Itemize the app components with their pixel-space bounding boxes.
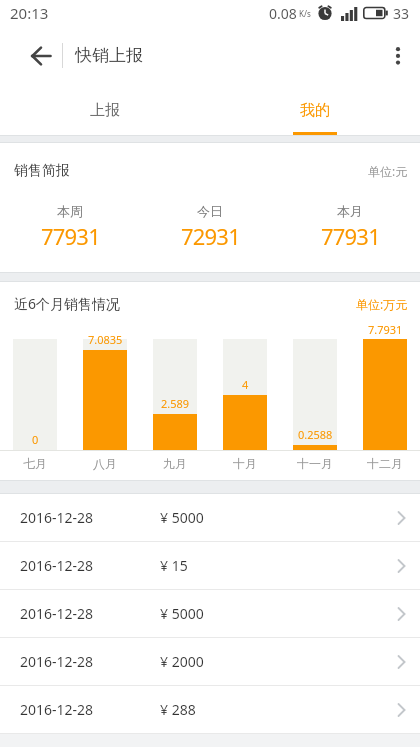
staticText: 0.2588: [298, 427, 333, 442]
staticText: 7.7931: [368, 322, 403, 336]
staticText: 我的: [300, 101, 330, 120]
staticText: 十二月: [367, 456, 403, 471]
staticText: 本月: [337, 203, 363, 219]
staticText: 2016-12-28: [20, 556, 160, 575]
staticText: 0: [32, 432, 39, 447]
button[interactable]: 2016-12-28: [0, 542, 420, 590]
staticText: 单位:万元: [356, 296, 408, 312]
staticText: 2016-12-28: [20, 604, 160, 623]
staticText: K/s: [299, 8, 311, 19]
button[interactable]: [376, 26, 420, 85]
button[interactable]: 2016-12-28: [0, 686, 420, 734]
staticText: 2016-12-28: [20, 508, 160, 527]
staticText: 八月: [93, 456, 117, 471]
staticText: 单位:元: [368, 163, 408, 179]
button[interactable]: 2016-12-28: [0, 590, 420, 638]
staticText: 销售简报: [14, 162, 70, 180]
staticText: ¥ 288: [160, 700, 196, 719]
button[interactable]: 上报: [0, 85, 210, 135]
staticText: 2016-12-28: [20, 652, 160, 671]
staticText: 今日: [197, 203, 223, 219]
staticText: 7.0835: [88, 332, 123, 347]
staticText: 4: [242, 377, 249, 392]
staticText: 77931: [41, 221, 100, 251]
staticText: 近6个月销售情况: [14, 294, 121, 313]
staticText: 2.589: [161, 396, 190, 411]
staticText: 2016-12-28: [20, 700, 160, 719]
staticText: 快销上报: [75, 45, 143, 66]
staticText: 0.08: [269, 4, 297, 23]
button[interactable]: 2016-12-28: [0, 494, 420, 542]
button[interactable]: 我的: [210, 85, 420, 135]
button[interactable]: [0, 26, 62, 85]
staticText: 20:13: [10, 3, 49, 23]
staticText: 十月: [233, 456, 257, 471]
staticText: ¥ 15: [160, 556, 188, 575]
staticText: ¥ 5000: [160, 604, 204, 623]
staticText: 77931: [321, 221, 380, 251]
staticText: ¥ 2000: [160, 652, 204, 671]
staticText: 33: [393, 4, 410, 23]
staticText: 72931: [181, 221, 240, 251]
staticText: 本周: [57, 203, 83, 219]
staticText: 九月: [163, 456, 187, 471]
staticText: 上报: [90, 101, 120, 120]
staticText: 七月: [23, 456, 47, 471]
button[interactable]: 2016-12-28: [0, 638, 420, 686]
staticText: ¥ 5000: [160, 508, 204, 527]
staticText: 十一月: [297, 456, 333, 471]
